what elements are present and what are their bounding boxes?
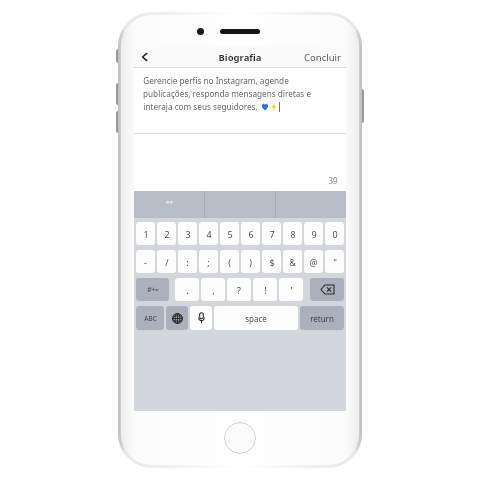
button[interactable]: (	[220, 250, 239, 273]
button[interactable]: 2	[157, 222, 176, 245]
staticText: (	[228, 256, 231, 268]
staticText: .	[186, 284, 189, 296]
button[interactable]: space	[214, 306, 298, 330]
button[interactable]: return	[300, 306, 344, 330]
staticText: "	[333, 256, 337, 268]
button[interactable]: /	[157, 250, 176, 273]
button[interactable]: &	[283, 250, 302, 273]
staticText: space	[245, 313, 267, 324]
staticText: Biografia	[218, 51, 262, 64]
button[interactable]: 6	[241, 222, 260, 245]
staticText: publicações, responda mensagens diretas …	[143, 88, 311, 99]
staticText: #+=	[147, 285, 159, 294]
staticText: !	[264, 284, 267, 296]
staticText: 39	[328, 175, 338, 186]
staticText: &	[289, 256, 296, 268]
button[interactable]: Back	[134, 46, 156, 68]
staticText: $	[269, 256, 275, 268]
button[interactable]: 9	[304, 222, 323, 245]
staticText: ;	[207, 256, 210, 268]
staticText: Gerencie perfis no Instagram, agende	[143, 75, 289, 86]
button[interactable]: Dictation	[190, 306, 212, 330]
button[interactable]: ""	[134, 191, 204, 218]
button[interactable]: Home	[224, 422, 256, 454]
staticText: 7	[269, 228, 275, 240]
staticText: ""	[166, 199, 173, 210]
button[interactable]: 3	[178, 222, 197, 245]
staticText: @	[309, 256, 318, 268]
staticText: ?	[237, 284, 241, 296]
button[interactable]: Gerencie perfis no Instagram, agende	[134, 68, 346, 134]
staticText: '	[290, 284, 293, 296]
button[interactable]: Change keyboard language	[166, 306, 188, 330]
button[interactable]: !	[253, 278, 277, 301]
button[interactable]: ;	[199, 250, 218, 273]
staticText: return	[310, 313, 334, 324]
button[interactable]: .	[175, 278, 199, 301]
button[interactable]: 1	[136, 222, 155, 245]
button[interactable]: $	[262, 250, 281, 273]
staticText: 0	[332, 228, 338, 240]
button[interactable]: :	[178, 250, 197, 273]
staticText: interaja com seus seguidores.	[143, 101, 258, 112]
button[interactable]: 5	[220, 222, 239, 245]
staticText: )	[249, 256, 252, 268]
button[interactable]: ?	[227, 278, 251, 301]
button[interactable]: ABC	[136, 306, 164, 330]
button[interactable]: Concluir	[304, 51, 341, 64]
staticText: Concluir	[304, 51, 341, 64]
staticText: 9	[311, 228, 317, 240]
button[interactable]: '	[279, 278, 303, 301]
button[interactable]: "	[325, 250, 344, 273]
staticText: ,	[212, 284, 215, 296]
staticText: 6	[248, 228, 254, 240]
button[interactable]: #+=	[136, 278, 169, 301]
button[interactable]: @	[304, 250, 323, 273]
button[interactable]: 4	[199, 222, 218, 245]
button[interactable]: 0	[325, 222, 344, 245]
staticText: 2	[164, 228, 170, 240]
staticText: -	[144, 256, 147, 268]
button[interactable]: 7	[262, 222, 281, 245]
staticText: 4	[206, 228, 212, 240]
button[interactable]: -	[136, 250, 155, 273]
staticText: 1	[143, 228, 149, 240]
button[interactable]: ,	[201, 278, 225, 301]
staticText: /	[165, 256, 169, 268]
staticText: 8	[290, 228, 296, 240]
button[interactable]: 8	[283, 222, 302, 245]
button[interactable]: Backspace	[310, 278, 344, 301]
button[interactable]: )	[241, 250, 260, 273]
staticText: 5	[227, 228, 233, 240]
staticText: :	[186, 256, 189, 268]
staticText: 3	[185, 228, 191, 240]
staticText: ABC	[144, 314, 157, 323]
